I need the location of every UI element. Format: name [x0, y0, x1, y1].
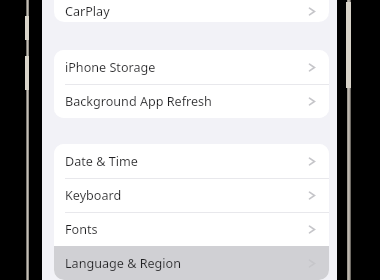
- button[interactable]: CarPlay: [54, 0, 329, 22]
- button[interactable]: Date & Time: [54, 144, 329, 178]
- button[interactable]: Keyboard: [54, 178, 329, 212]
- staticText: Language & Region: [65, 255, 306, 272]
- staticText: iPhone Storage: [65, 59, 306, 76]
- button[interactable]: Fonts: [54, 212, 329, 246]
- staticText: Keyboard: [65, 187, 306, 204]
- button[interactable]: iPhone Storage: [54, 50, 329, 84]
- staticText: Date & Time: [65, 153, 306, 170]
- staticText: CarPlay: [65, 3, 306, 20]
- button[interactable]: Background App Refresh: [54, 84, 329, 118]
- staticText: Fonts: [65, 221, 306, 238]
- staticText: Background App Refresh: [65, 93, 306, 110]
- button[interactable]: Language & Region: [54, 246, 329, 280]
